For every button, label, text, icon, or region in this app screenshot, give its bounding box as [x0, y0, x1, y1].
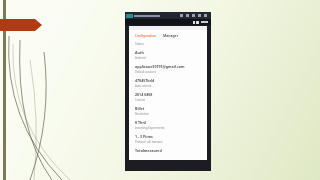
staticText: Manager: [163, 33, 179, 38]
staticText: Configuration: [135, 34, 157, 38]
button[interactable]: applicaue30191@gmail.com: [135, 62, 201, 76]
button[interactable]: 2014 0458: [135, 90, 201, 104]
button[interactable]: Totalmeasured: [135, 146, 201, 155]
staticText: 2014 0458: [135, 92, 153, 97]
button[interactable]: Auth: [135, 48, 201, 62]
button[interactable]: Configuration: [135, 34, 157, 38]
staticText: Android: [135, 56, 146, 60]
button[interactable]: 1 - 3 Pitws: [135, 132, 201, 146]
staticText: applicaue30191@gmail.com: [135, 64, 185, 69]
staticText: 1 - 3 Pitws: [135, 134, 153, 139]
button[interactable]: 478457bdd: [135, 76, 201, 90]
staticText: Billet: [135, 106, 145, 111]
staticText: Incoming Experiments: [135, 126, 165, 130]
staticText: Contact: [135, 98, 146, 102]
staticText: Status: [135, 42, 144, 46]
button[interactable]: 8 Thril: [135, 118, 201, 132]
staticText: Auto-criteria: [135, 84, 152, 88]
staticText: Resolution: [135, 112, 149, 116]
staticText: Protocol call transact: [135, 140, 163, 144]
staticText: Default account: [135, 70, 156, 74]
button[interactable]: Billet: [135, 104, 201, 118]
staticText: Totalmeasured: [135, 148, 162, 153]
button[interactable]: Status: [135, 40, 201, 48]
staticText: 478457bdd: [135, 78, 155, 83]
staticText: Auth: [135, 50, 144, 55]
button[interactable]: Manager: [163, 33, 179, 38]
staticText: 8 Thril: [135, 120, 147, 125]
